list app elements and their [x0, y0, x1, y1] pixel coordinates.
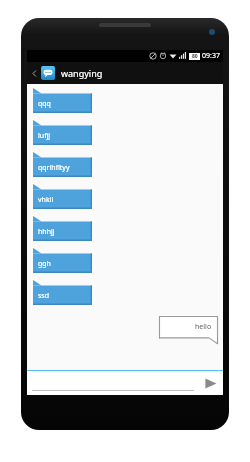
- staticText: ssd: [38, 291, 50, 301]
- staticText: qqq: [38, 99, 51, 109]
- staticText: hhhjj: [38, 227, 55, 237]
- button[interactable]: ssd: [33, 280, 92, 305]
- staticText: lufjj: [38, 131, 51, 141]
- staticText: ggh: [38, 259, 51, 269]
- staticText: 80: [192, 53, 198, 60]
- button[interactable]: qqq: [33, 88, 92, 113]
- button[interactable]: ggh: [33, 248, 92, 273]
- staticText: wangying: [61, 67, 103, 79]
- button[interactable]: hello: [159, 316, 218, 344]
- button[interactable]: qqrihfltyy: [33, 152, 92, 177]
- staticText: hello: [195, 322, 212, 332]
- button[interactable]: lufjj: [33, 120, 92, 145]
- staticText: vhkll: [38, 195, 54, 205]
- button[interactable]: Back: [27, 62, 57, 84]
- button[interactable]: vhkll: [33, 184, 92, 209]
- button[interactable]: hhhjj: [33, 216, 92, 241]
- staticText: qqrihfltyy: [38, 163, 70, 173]
- staticText: 09:37: [202, 51, 220, 61]
- button[interactable]: Send: [197, 371, 223, 395]
- button[interactable]: Message input: [27, 371, 197, 395]
